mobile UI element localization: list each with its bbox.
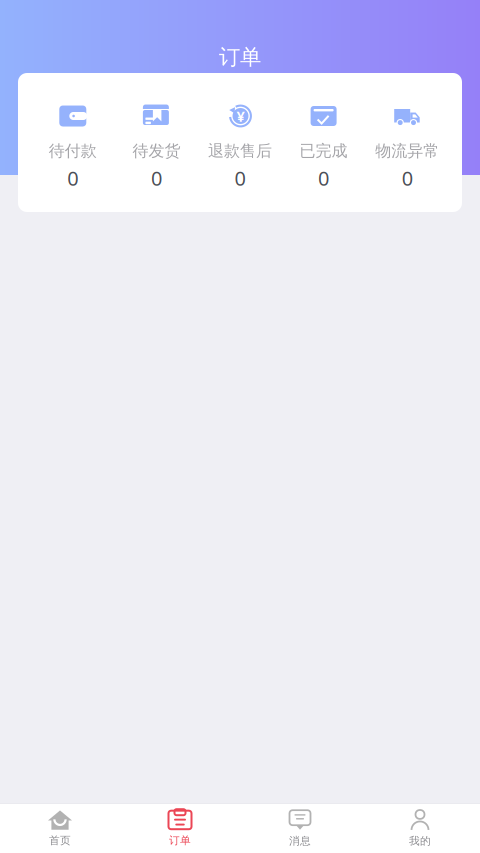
button[interactable]: 我的 (360, 803, 480, 853)
staticText: 已完成 (300, 141, 348, 161)
staticText: 退款售后 (208, 141, 272, 161)
staticText: 0 (67, 165, 78, 191)
staticText: 首页 (49, 834, 71, 847)
staticText: 0 (151, 165, 162, 191)
staticText: 待发货 (132, 141, 180, 161)
staticText: 0 (318, 165, 329, 191)
staticText: 消息 (289, 834, 311, 847)
staticText: 我的 (409, 834, 431, 847)
button[interactable]: 已完成 (282, 105, 365, 187)
staticText: 0 (402, 165, 413, 191)
staticText: 0 (234, 165, 245, 191)
staticText: 订单 (169, 834, 191, 847)
staticText: 订单 (219, 44, 261, 70)
button[interactable]: 待发货 (115, 105, 198, 187)
button[interactable]: 物流异常 (365, 105, 449, 187)
staticText: 物流异常 (375, 141, 439, 161)
button[interactable]: 待付款 (31, 105, 115, 187)
button[interactable]: ¥ (198, 105, 282, 187)
button[interactable]: 首页 (0, 804, 120, 853)
button[interactable]: 订单 (120, 804, 240, 853)
staticText: 待付款 (49, 141, 97, 161)
staticText: ¥ (236, 106, 244, 126)
button[interactable]: 消息 (240, 803, 360, 853)
